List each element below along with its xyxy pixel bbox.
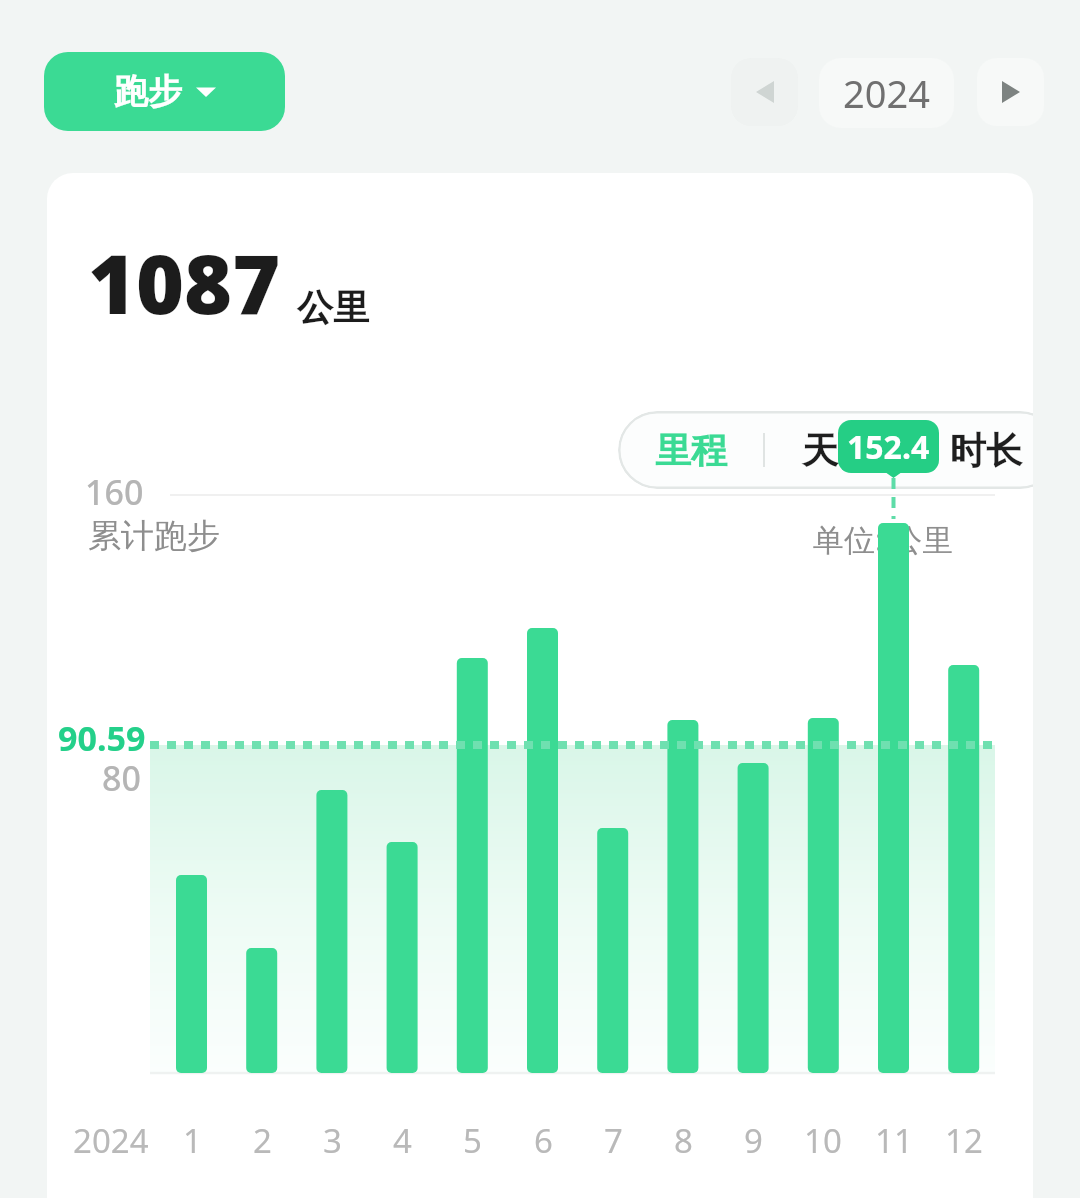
staticText: 7 (604, 1118, 623, 1163)
staticText: 11 (875, 1118, 913, 1163)
button[interactable]: 152.4 (838, 420, 939, 473)
staticText: 152.4 (847, 425, 930, 469)
staticText: 3 (323, 1118, 342, 1163)
staticText: 4 (393, 1118, 412, 1163)
staticText: 里程 (655, 428, 727, 473)
staticText: 160 (85, 469, 144, 515)
staticText: 天数 (802, 428, 874, 473)
staticText: 5 (463, 1118, 482, 1163)
button[interactable]: Previous year (731, 58, 798, 126)
button[interactable]: Next year (977, 58, 1044, 126)
staticText: 2024 (843, 67, 930, 119)
button[interactable]: 跑步 (44, 52, 285, 131)
staticText: 单位: 公里 (813, 518, 954, 560)
staticText: 10 (804, 1118, 842, 1163)
staticText: 2024 (73, 1118, 149, 1163)
staticText: 1 (183, 1118, 202, 1163)
staticText: 9 (744, 1118, 763, 1163)
button[interactable]: 里程 (618, 411, 763, 489)
staticText: 90.59 (58, 715, 146, 761)
staticText: 公里 (297, 285, 369, 330)
button[interactable]: 时长 (913, 411, 1033, 489)
staticText: 累计跑步 (88, 515, 220, 557)
staticText: 2 (253, 1118, 272, 1163)
button[interactable]: 2024 (819, 58, 954, 128)
staticText: 8 (674, 1118, 693, 1163)
staticText: 80 (102, 755, 141, 801)
staticText: 时长 (950, 428, 1022, 473)
button[interactable]: 天数 (765, 411, 911, 489)
staticText: 跑步 (114, 70, 182, 113)
staticText: 6 (534, 1118, 553, 1163)
staticText: 1087 (88, 226, 281, 338)
staticText: 12 (945, 1118, 983, 1163)
